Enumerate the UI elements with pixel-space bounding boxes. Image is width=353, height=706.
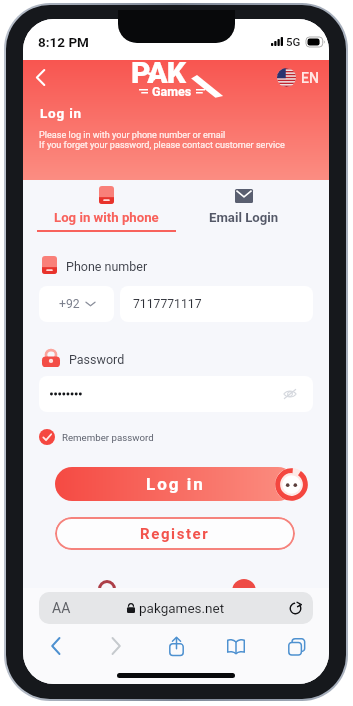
button[interactable]: AA (39, 592, 313, 624)
button[interactable]: Forward (97, 631, 135, 661)
button[interactable]: EN (277, 68, 319, 87)
button[interactable]: 7117771117 (120, 286, 313, 322)
button[interactable]: Register (55, 517, 295, 550)
button[interactable]: Email Login (183, 180, 304, 236)
staticText: Please log in with your phone number or … (39, 130, 285, 150)
staticText: 5G (286, 35, 301, 48)
button[interactable]: Log in with phone (37, 180, 176, 236)
staticText: Log in with phone (54, 210, 159, 225)
staticText: Remember password (62, 432, 154, 443)
staticText: Log in (40, 105, 82, 121)
staticText: Log in (146, 474, 205, 494)
button[interactable]: Back (28, 65, 52, 89)
staticText: AA (52, 600, 71, 616)
button[interactable]: Show password (39, 376, 313, 412)
button[interactable]: +92 (39, 286, 114, 322)
staticText: Password (69, 352, 125, 367)
button[interactable]: Tabs (277, 631, 315, 661)
staticText: Register (140, 525, 210, 543)
staticText: Games (152, 84, 192, 99)
button[interactable]: Log in (55, 467, 295, 501)
button[interactable]: Customer support (275, 468, 308, 501)
staticText: Phone number (66, 259, 148, 274)
staticText: PAK (131, 55, 186, 90)
staticText: 7117771117 (133, 297, 202, 311)
button[interactable]: Show password (280, 384, 300, 404)
staticText: Email Login (209, 210, 279, 225)
button[interactable]: Remember password (39, 429, 154, 445)
button[interactable]: Back (37, 631, 75, 661)
button[interactable]: Bookmarks (217, 631, 255, 661)
staticText: pakgames.net (139, 600, 225, 616)
button[interactable]: Reload (286, 599, 304, 617)
staticText: EN (301, 70, 319, 86)
staticText: +92 (59, 297, 80, 311)
button[interactable]: Share (157, 631, 195, 661)
staticText: 8:12 PM (38, 34, 89, 50)
